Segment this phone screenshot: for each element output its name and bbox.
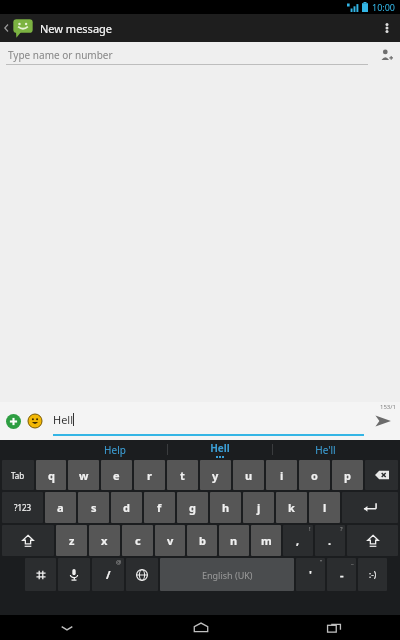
button[interactable]: y [200,460,231,490]
staticText: o [311,468,318,483]
button[interactable]: k [276,492,307,523]
staticText: - [340,567,344,582]
button[interactable]: Add attachment [3,411,23,431]
button[interactable]: h [210,492,241,523]
staticText: @ [116,558,122,566]
staticText: New message [40,21,113,36]
button[interactable]: r [134,460,165,490]
button[interactable]: ' [296,558,325,591]
button[interactable]: w [68,460,99,490]
button[interactable]: o [299,460,330,490]
button[interactable]: More options [374,14,400,42]
staticText: e [113,468,120,483]
other: Back [2,21,10,35]
button[interactable]: v [155,525,185,556]
staticText: t [180,468,185,483]
button[interactable]: Add contact [372,42,400,68]
button[interactable]: Hell [168,440,272,459]
staticText: i [280,468,284,483]
staticText: l [323,500,327,515]
button[interactable]: g [177,492,208,523]
staticText: s [91,500,97,515]
button[interactable]: n [219,525,249,556]
button[interactable]: Change language [126,558,158,591]
button[interactable]: Enter [342,492,398,523]
staticText: y [212,468,219,483]
button[interactable]: u [233,460,264,490]
staticText: r [147,468,152,483]
staticText: g [189,500,196,515]
button[interactable]: l [309,492,340,523]
staticText: k [288,500,295,515]
button[interactable]: Hell [53,402,364,440]
button[interactable]: ?123 [2,492,43,523]
button[interactable]: . [315,525,345,556]
staticText: 10:00 [372,1,396,13]
button[interactable]: Delete [365,460,398,490]
staticText: v [167,533,174,548]
button[interactable]: d [111,492,142,523]
button[interactable]: Send [368,404,398,438]
staticText: u [245,468,253,483]
staticText: Hell [210,441,230,455]
button[interactable]: t [167,460,198,490]
staticText: ?123 [14,502,32,513]
button[interactable]: p [332,460,363,490]
staticText: w [79,468,89,483]
button[interactable]: i [266,460,297,490]
staticText: b [199,533,206,548]
button[interactable]: Shift [2,525,54,556]
staticText: Type name or number [8,48,113,62]
button[interactable]: English (UK) [160,558,294,591]
button[interactable]: b [187,525,217,556]
staticText: p [344,468,351,483]
button[interactable]: j [243,492,274,523]
staticText: Tab [11,470,25,481]
staticText: d [123,500,130,515]
button[interactable]: f [144,492,175,523]
button[interactable]: x [89,525,120,556]
staticText: ? [340,525,343,533]
button[interactable]: s [78,492,109,523]
button[interactable]: He'll [273,440,377,459]
button[interactable]: Back [2,14,113,42]
staticText: / [106,567,111,582]
button[interactable]: a [45,492,76,523]
staticText: " [320,558,323,566]
button[interactable]: m [251,525,281,556]
staticText: _ [351,558,354,566]
button[interactable]: Keyboard settings [25,558,56,591]
staticText: 153/1 [380,403,396,411]
button[interactable]: / [92,558,124,591]
button[interactable]: - [327,558,356,591]
button[interactable]: e [101,460,132,490]
button[interactable]: Insert emoticon [25,411,45,431]
staticText: . [328,533,332,548]
button[interactable]: , [283,525,313,556]
button[interactable]: Voice input [58,558,90,591]
staticText: English (UK) [202,569,253,581]
button[interactable]: Tab [2,460,34,490]
staticText: He'll [315,443,336,457]
staticText: :-) [369,569,377,580]
button[interactable]: c [122,525,153,556]
staticText: h [222,500,230,515]
button[interactable]: Hide keyboard [0,615,134,640]
staticText: , [296,533,300,548]
staticText: ! [309,525,311,533]
button[interactable]: Home [134,615,267,640]
button[interactable]: q [36,460,66,490]
staticText: Help [104,443,126,457]
staticText: a [57,500,64,515]
staticText: f [157,500,162,515]
staticText: m [261,533,272,548]
button[interactable]: Recent apps [267,615,400,640]
button[interactable]: :-) [358,558,387,591]
staticText: Hell [53,412,74,427]
staticText: j [257,500,261,515]
button[interactable]: z [56,525,87,556]
staticText: c [135,533,141,548]
button[interactable]: Help [63,440,167,459]
button[interactable]: Type name or number [0,42,400,68]
button[interactable]: Shift [347,525,398,556]
